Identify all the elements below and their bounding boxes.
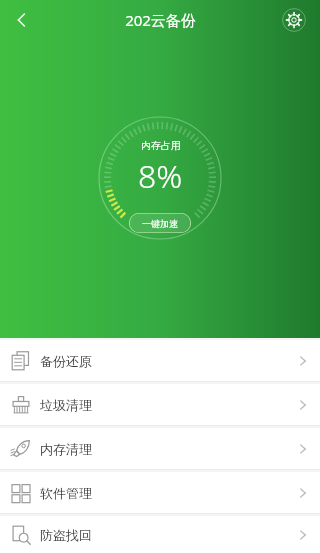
- staticText: 备份还原: [40, 353, 92, 369]
- button[interactable]: 防盗找回: [0, 516, 320, 553]
- staticText: 垃圾清理: [40, 397, 92, 413]
- button[interactable]: 内存清理: [0, 428, 320, 469]
- staticText: 防盗找回: [40, 527, 92, 543]
- button[interactable]: Back: [0, 0, 44, 40]
- button[interactable]: 垃圾清理: [0, 384, 320, 425]
- staticText: 软件管理: [40, 485, 92, 501]
- staticText: 内存占用: [141, 139, 181, 152]
- button[interactable]: Settings: [274, 0, 314, 40]
- button[interactable]: 软件管理: [0, 472, 320, 513]
- button[interactable]: 备份还原: [0, 340, 320, 381]
- staticText: 内存清理: [40, 441, 92, 457]
- staticText: 一键加速: [142, 218, 178, 229]
- staticText: 202云备份: [125, 10, 196, 30]
- button[interactable]: 一键加速: [129, 213, 191, 233]
- staticText: 8%: [138, 154, 183, 198]
